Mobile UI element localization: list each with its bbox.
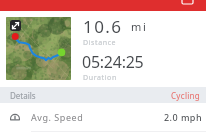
button[interactable]: Route map <box>6 17 71 80</box>
staticText: Cycling <box>171 90 201 101</box>
button[interactable]: Avg. Speed <box>0 103 206 131</box>
staticText: Avg. Speed <box>31 111 84 123</box>
staticText: 05:24:25 <box>82 51 144 73</box>
staticText: 2.0 mph <box>164 111 202 123</box>
staticText: Duration <box>83 73 117 83</box>
staticText: Distance <box>83 38 117 48</box>
button[interactable]: Expand map <box>10 20 21 31</box>
staticText: 10.6 <box>83 15 123 38</box>
staticText: mi <box>131 19 148 34</box>
staticText: Details <box>10 90 36 101</box>
